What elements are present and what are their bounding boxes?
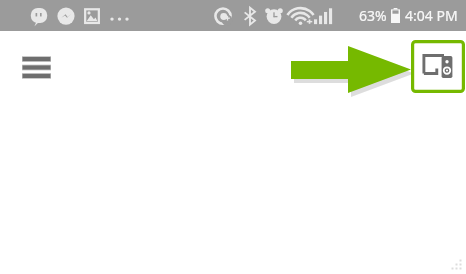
- button[interactable]: Cast to device: [411, 40, 465, 93]
- staticText: 4:04 PM: [405, 6, 458, 25]
- button[interactable]: Open navigation menu: [14, 48, 58, 86]
- staticText: 63%: [359, 6, 387, 25]
